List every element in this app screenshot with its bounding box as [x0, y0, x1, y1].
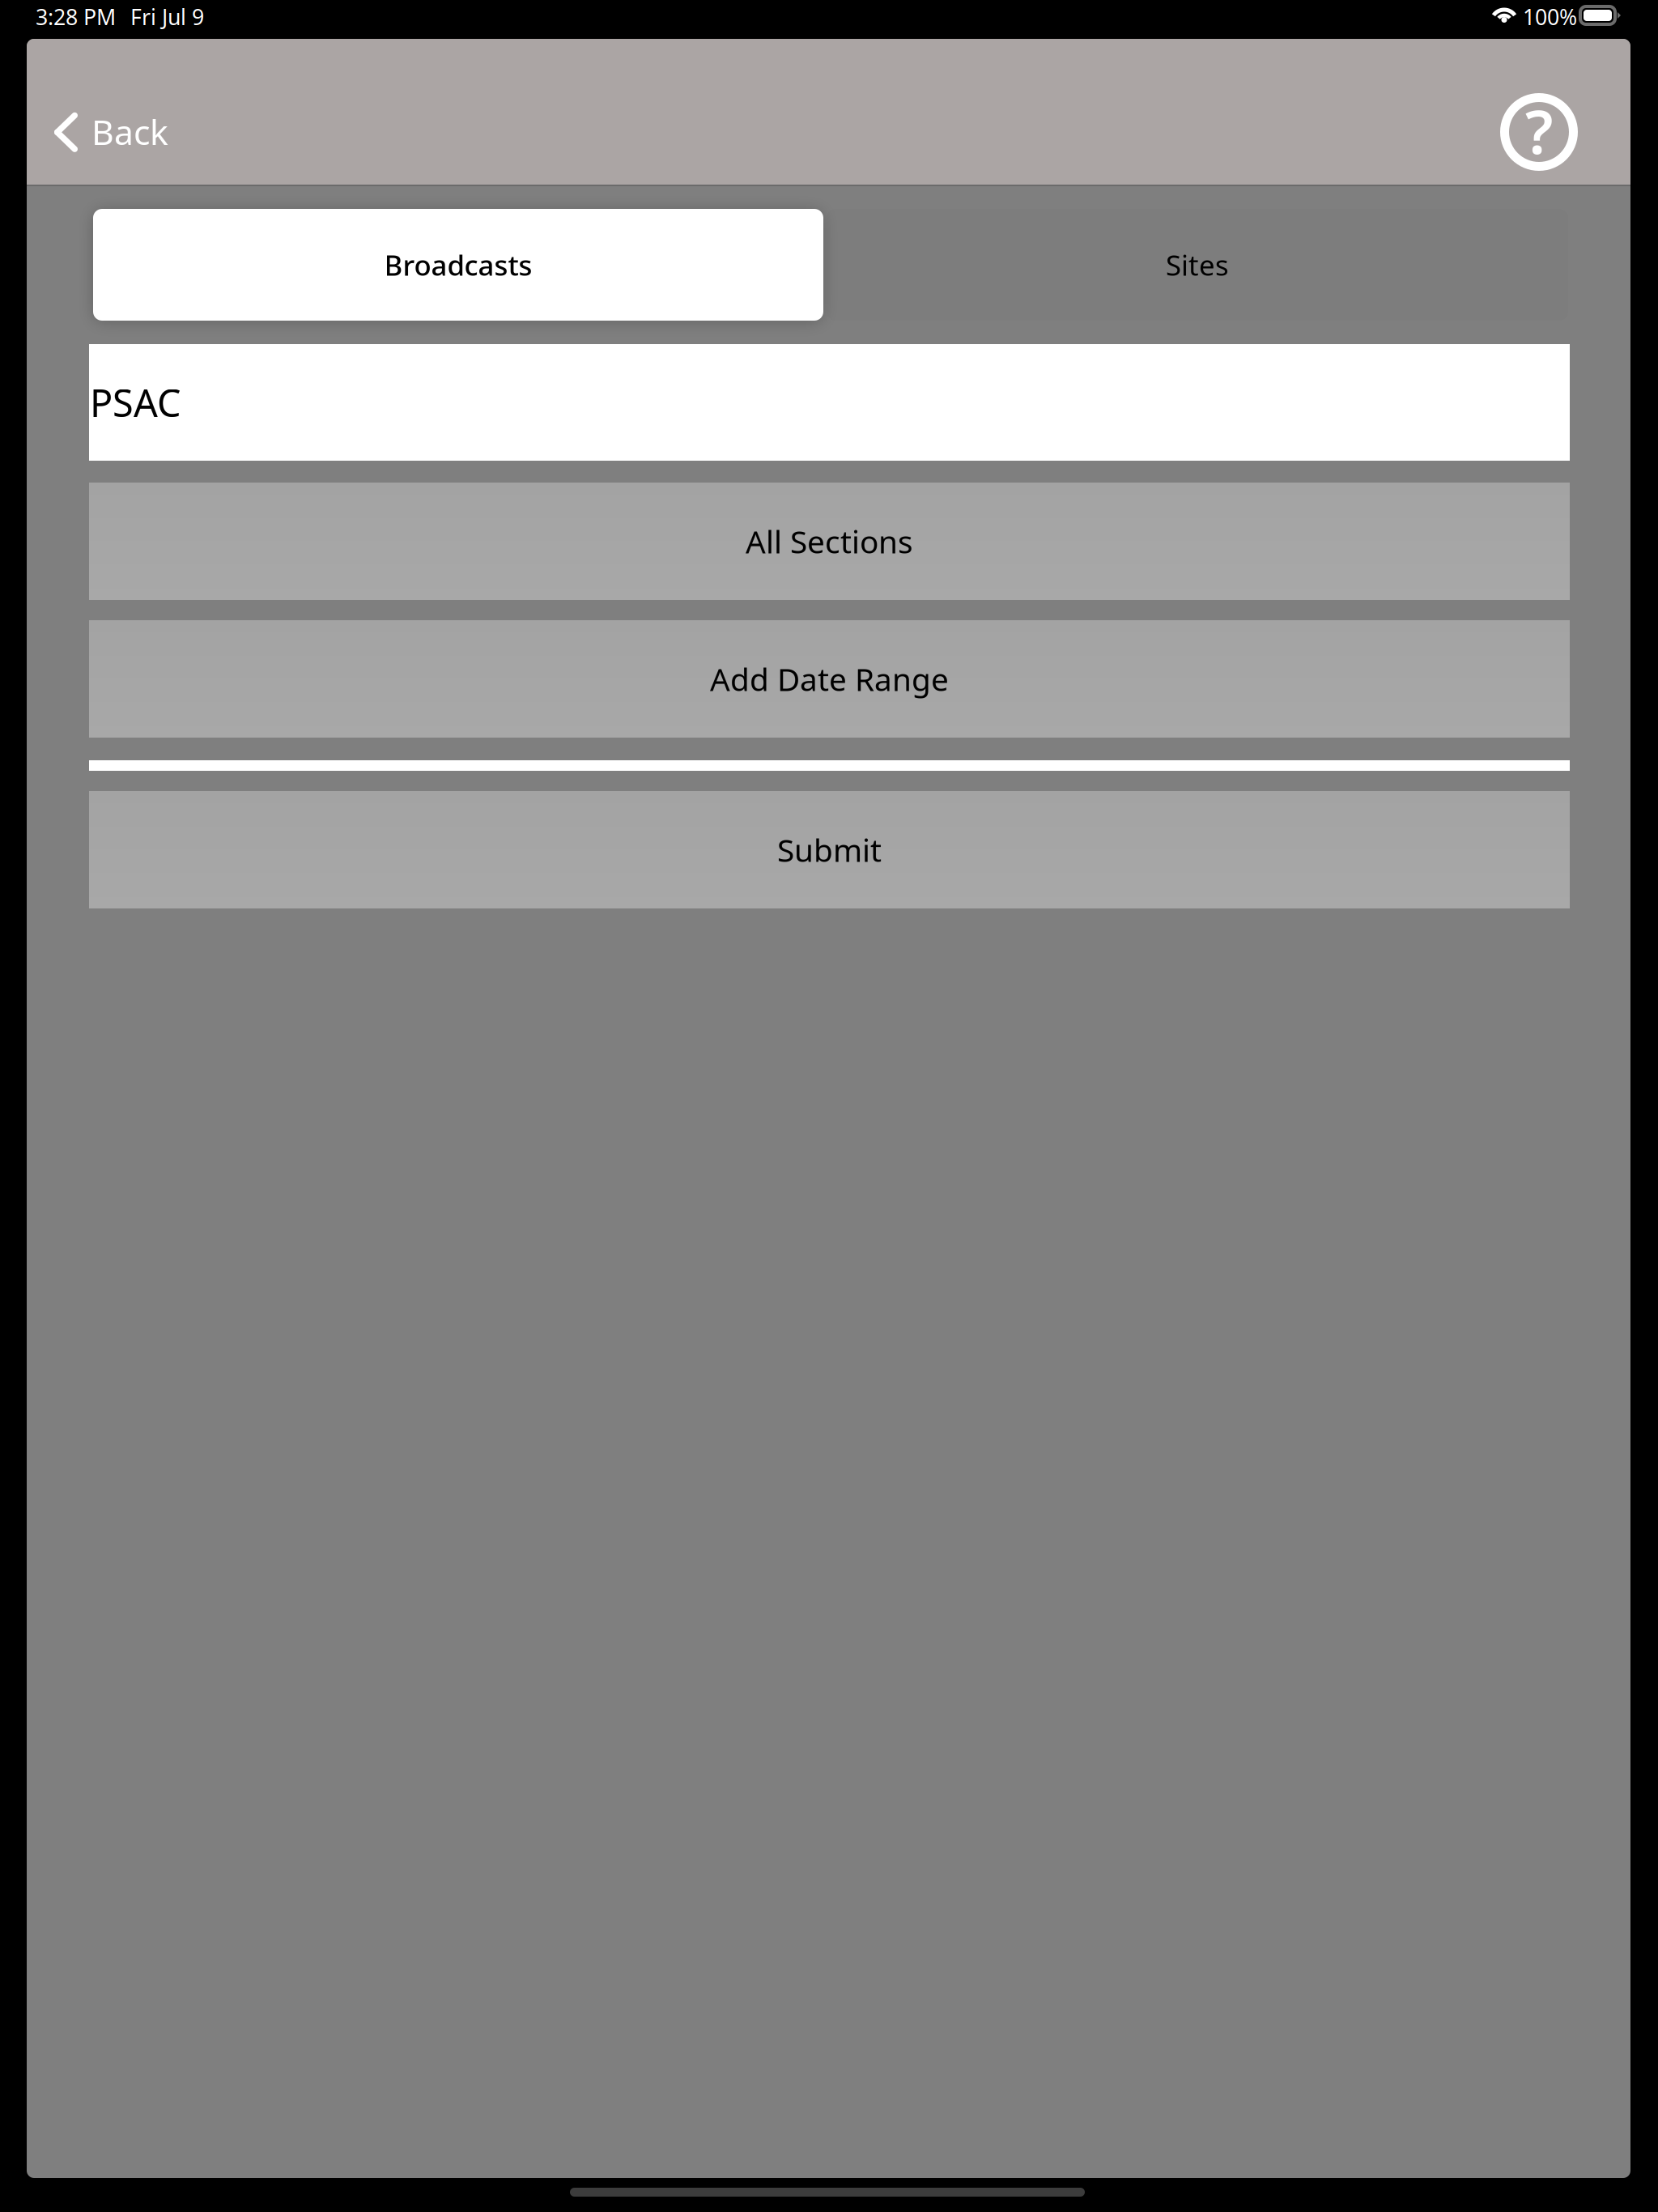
- staticText: 3:28 PM: [36, 2, 116, 31]
- button[interactable]: Sites: [827, 209, 1568, 321]
- button[interactable]: PSAC: [89, 344, 1570, 461]
- button[interactable]: Broadcasts: [93, 209, 823, 321]
- staticText: Broadcasts: [384, 246, 532, 283]
- staticText: ?: [1525, 90, 1553, 171]
- staticText: All Sections: [746, 520, 913, 562]
- staticText: PSAC: [90, 377, 181, 428]
- button[interactable]: Help: [1500, 93, 1578, 171]
- staticText: Back: [91, 108, 168, 154]
- staticText: Sites: [1166, 246, 1229, 283]
- button[interactable]: All Sections: [89, 483, 1570, 600]
- staticText: Add Date Range: [710, 658, 949, 700]
- staticText: 100%: [1523, 2, 1577, 31]
- staticText: Fri Jul 9: [130, 2, 204, 31]
- staticText: Submit: [777, 829, 882, 870]
- button[interactable]: Add Date Range: [89, 620, 1570, 738]
- button[interactable]: Back: [45, 97, 178, 166]
- button[interactable]: Submit: [89, 791, 1570, 908]
